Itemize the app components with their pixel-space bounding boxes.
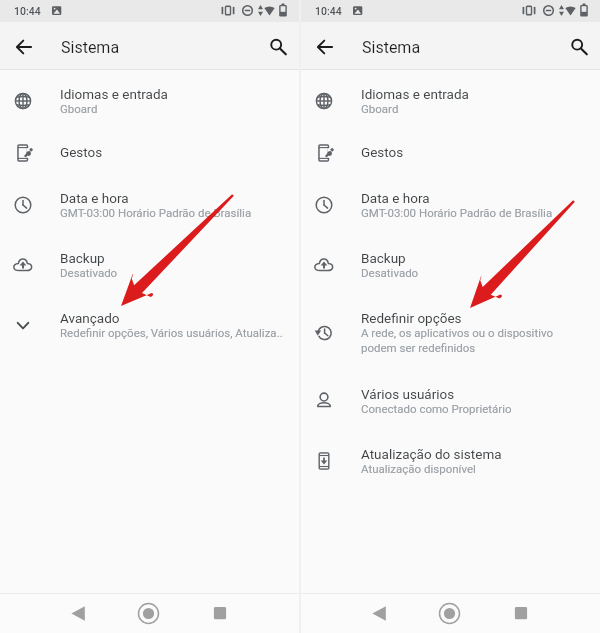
staticText: Backup: [361, 250, 406, 266]
staticText: Data e hora: [361, 190, 430, 206]
staticText: Sistema: [362, 38, 421, 57]
button[interactable]: Atualização do sistema: [301, 431, 600, 491]
staticText: Gboard: [60, 102, 98, 115]
button[interactable]: Vários usuários: [301, 371, 600, 431]
button[interactable]: Back: [8, 31, 40, 63]
staticText: Gestos: [60, 144, 103, 160]
staticText: Vários usuários: [361, 386, 455, 402]
staticText: Atualização disponível: [361, 462, 476, 475]
button[interactable]: Recent apps: [500, 593, 600, 633]
staticText: A rede, os aplicativos ou o dispositivo …: [361, 326, 553, 355]
button[interactable]: Redefinir opções: [301, 295, 600, 371]
button[interactable]: Back: [0, 593, 99, 633]
staticText: 10:44: [315, 5, 342, 17]
staticText: 10:44: [14, 5, 41, 17]
staticText: Redefinir opções, Vários usuários, Atual…: [60, 326, 283, 339]
staticText: Gboard: [361, 102, 399, 115]
staticText: Avançado: [60, 310, 120, 326]
staticText: Sistema: [61, 38, 120, 57]
button[interactable]: Home: [400, 593, 500, 633]
button[interactable]: Search: [563, 31, 595, 63]
staticText: Conectado como Proprietário: [361, 402, 512, 415]
button[interactable]: Backup: [0, 235, 299, 295]
button[interactable]: Data e hora: [0, 175, 299, 235]
button[interactable]: Gestos: [301, 131, 600, 175]
button[interactable]: Home: [99, 593, 199, 633]
button[interactable]: Data e hora: [301, 175, 600, 235]
button[interactable]: Back: [309, 31, 341, 63]
button[interactable]: Recent apps: [199, 593, 299, 633]
staticText: Desativado: [60, 266, 118, 279]
button[interactable]: Back: [301, 593, 400, 633]
staticText: GMT-03:00 Horário Padrão de Brasília: [361, 206, 553, 219]
staticText: Idiomas e entrada: [361, 86, 469, 102]
button[interactable]: Idiomas e entrada: [0, 71, 299, 131]
staticText: Idiomas e entrada: [60, 86, 168, 102]
staticText: Backup: [60, 250, 105, 266]
button[interactable]: Gestos: [0, 131, 299, 175]
button[interactable]: Backup: [301, 235, 600, 295]
staticText: Gestos: [361, 144, 404, 160]
staticText: GMT-03:00 Horário Padrão de Brasília: [60, 206, 252, 219]
button[interactable]: Search: [262, 31, 294, 63]
staticText: Data e hora: [60, 190, 129, 206]
staticText: Desativado: [361, 266, 419, 279]
staticText: Atualização do sistema: [361, 446, 502, 462]
button[interactable]: Avançado: [0, 295, 299, 355]
button[interactable]: Idiomas e entrada: [301, 71, 600, 131]
staticText: Redefinir opções: [361, 310, 462, 326]
